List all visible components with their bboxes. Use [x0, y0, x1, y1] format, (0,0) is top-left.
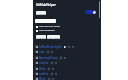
- button[interactable]: Work: [35, 76, 54, 80]
- staticText: Submit: [37, 36, 45, 39]
- button[interactable]: Submit: [36, 35, 46, 39]
- button[interactable]: [35, 19, 56, 23]
- staticText: notfiles: [39, 72, 49, 76]
- button[interactable]: Toggle dark mode: [85, 10, 96, 14]
- button[interactable]: Only show my repos: [36, 25, 60, 28]
- button[interactable]: Show followers: [36, 29, 55, 32]
- staticText: NamingIsCrazy: [39, 56, 58, 60]
- staticText: Work: [39, 77, 46, 80]
- staticText: Show followers: [39, 29, 55, 32]
- button[interactable]: note: [35, 49, 53, 54]
- button[interactable]: Clear Filter: [47, 35, 60, 39]
- staticText: Setting: [37, 12, 45, 15]
- button[interactable]: ImNotPlanningOn: [35, 44, 74, 49]
- button[interactable]: Work: [35, 66, 54, 71]
- staticText: Clear Filter: [47, 36, 60, 39]
- staticText: ImNotPlanningOn: [39, 45, 62, 49]
- staticText: Only show my repos: [39, 25, 60, 28]
- button[interactable]: NamingIsCrazy: [35, 55, 66, 60]
- staticText: notfiles: [39, 61, 49, 65]
- staticText: note: [39, 50, 45, 54]
- button[interactable]: Setting: [36, 11, 46, 15]
- staticText: Work: [39, 67, 46, 71]
- button[interactable]: notfiles: [35, 71, 57, 76]
- button[interactable]: notfiles: [35, 60, 57, 65]
- staticText: GitHubHelper: [36, 3, 56, 7]
